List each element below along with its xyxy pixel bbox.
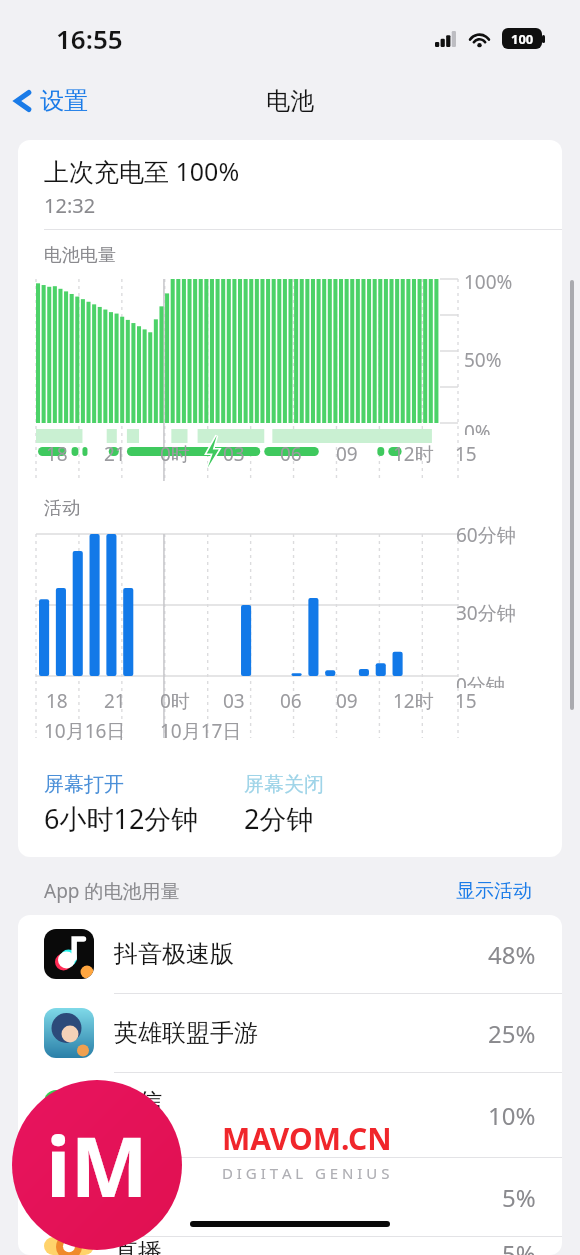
staticText: 10月17日 (160, 718, 242, 744)
staticText: 03 (223, 441, 245, 467)
staticText: 21 (104, 441, 126, 467)
staticText: 48% (488, 938, 536, 971)
staticText: 活动 (114, 1119, 152, 1143)
button[interactable]: 设置 (0, 80, 100, 122)
staticText: 微信 (114, 1087, 162, 1117)
staticText: 30分钟 (456, 600, 516, 626)
staticText: 直播 (114, 1237, 162, 1255)
staticText: 电池 (266, 86, 314, 116)
staticText: 12:32 (44, 192, 96, 219)
staticText: 09 (336, 688, 358, 714)
staticText: 21 (104, 688, 126, 714)
staticText: 06 (280, 688, 302, 714)
button[interactable]: 英雄联盟手游 (18, 994, 562, 1072)
staticText: 50% (464, 347, 502, 373)
staticText: 2分钟 (244, 800, 314, 837)
staticText: 屏幕打开 (44, 772, 124, 797)
staticText: MAVOM.CN (222, 1118, 392, 1159)
staticText: iM (46, 1109, 148, 1221)
staticText: 抖音极速版 (114, 939, 234, 969)
staticText: 06 (280, 441, 302, 467)
staticText: 16:55 (56, 21, 123, 56)
staticText: 100 (511, 30, 534, 48)
staticText: 0分钟 (456, 672, 505, 688)
staticText: 上次充电至 100% (44, 154, 240, 188)
staticText: 活动 (44, 497, 80, 520)
staticText: 18 (46, 441, 68, 467)
staticText: 0% (464, 419, 491, 435)
staticText: 屏幕关闭 (244, 772, 324, 797)
staticText: 英雄联盟手游 (114, 1018, 258, 1048)
button[interactable]: 微信 (18, 1073, 562, 1157)
staticText: 25% (488, 1017, 536, 1050)
staticText: 09 (336, 441, 358, 467)
staticText: 12时 (393, 688, 434, 714)
staticText: App 的电池用量 (44, 878, 180, 904)
staticText: 10% (488, 1099, 536, 1132)
staticText: 12时 (393, 441, 434, 467)
staticText: 显示活动 (456, 879, 532, 903)
staticText: 10月16日 (44, 718, 126, 744)
staticText: 0时 (160, 688, 190, 714)
staticText: 5% (502, 1181, 536, 1214)
staticText: 设置 (40, 86, 88, 116)
staticText: 电池电量 (44, 244, 116, 267)
staticText: 5% (502, 1237, 536, 1255)
staticText: D I G I T A L G E N I U S (222, 1163, 390, 1183)
staticText: 100% (464, 269, 513, 295)
button[interactable]: 直播 (18, 1237, 562, 1255)
staticText: 6小时12分钟 (44, 800, 199, 837)
staticText: 0时 (160, 441, 190, 467)
button[interactable]: 抖音极速版 (18, 915, 562, 993)
staticText: 15 (455, 688, 477, 714)
button[interactable]: 显示活动 (452, 875, 536, 907)
staticText: 60分钟 (456, 522, 516, 548)
staticText: 18 (46, 688, 68, 714)
button[interactable]: 5% (18, 1158, 562, 1236)
staticText: 03 (223, 688, 245, 714)
staticText: 15 (455, 441, 477, 467)
